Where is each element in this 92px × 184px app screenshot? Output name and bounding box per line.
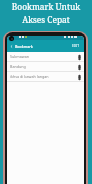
staticText: Sukmawan	[10, 54, 30, 59]
button[interactable]: ikhsa di bawah langan	[7, 72, 84, 82]
staticText: Bookmark Untuk Akses Cepat	[0, 1, 92, 25]
button[interactable]: EDIT	[69, 44, 84, 48]
button[interactable]: More options	[76, 74, 82, 80]
staticText: Bookmark	[15, 44, 33, 49]
button[interactable]: Bandung	[7, 62, 84, 72]
staticText: ikhsa di bawah langan	[10, 74, 49, 79]
staticText: Bandung	[10, 64, 26, 69]
button[interactable]: Back	[7, 41, 15, 52]
button[interactable]: Sukmawan	[7, 52, 84, 62]
staticText: EDIT	[72, 44, 79, 48]
button[interactable]: More options	[76, 54, 82, 60]
button[interactable]: More options	[76, 64, 82, 70]
